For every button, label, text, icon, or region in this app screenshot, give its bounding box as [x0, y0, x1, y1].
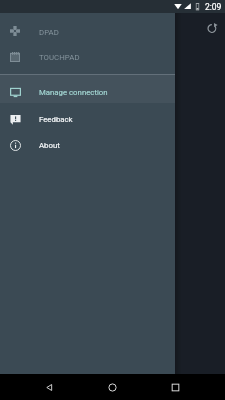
button[interactable]: Recents: [159, 374, 191, 400]
staticText: Manage connection: [39, 88, 108, 97]
staticText: DPAD: [39, 28, 59, 37]
button[interactable]: Refresh: [203, 19, 221, 37]
button[interactable]: TOUCHPAD: [0, 44, 175, 70]
staticText: TOUCHPAD: [39, 53, 80, 62]
button[interactable]: DPAD: [0, 19, 175, 45]
button[interactable]: About: [0, 132, 175, 158]
staticText: 2:09: [205, 2, 222, 12]
button[interactable]: Manage connection: [0, 79, 175, 105]
button[interactable]: Feedback: [0, 106, 175, 132]
button[interactable]: Home: [96, 374, 128, 400]
staticText: About: [39, 141, 60, 150]
button[interactable]: Back: [33, 374, 65, 400]
staticText: Feedback: [39, 115, 73, 124]
